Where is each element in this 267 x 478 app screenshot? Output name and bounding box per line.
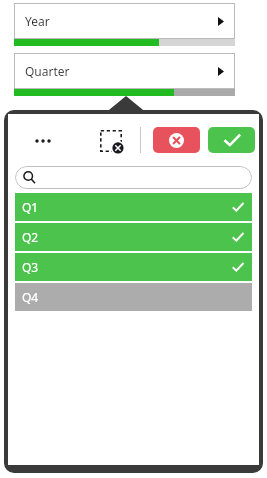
staticText: Q1 [22,199,39,215]
button[interactable]: Quarter [14,53,235,96]
staticText: Q3 [22,259,39,275]
staticText: Year [25,13,50,29]
button[interactable]: Cancel selection [153,127,200,153]
staticText: Q2 [22,229,39,245]
staticText: Q4 [22,289,39,305]
staticText: Quarter [25,63,70,79]
button[interactable]: Confirm selection [208,127,255,153]
button[interactable]: Q2 [15,223,252,251]
button[interactable]: Clear selection [96,126,126,156]
button[interactable]: Q4 [15,283,252,311]
button[interactable]: Search [15,166,252,189]
button[interactable]: Year [14,3,235,46]
button[interactable]: More options [30,128,56,154]
button[interactable]: Q1 [15,193,252,221]
button[interactable]: Q3 [15,253,252,281]
